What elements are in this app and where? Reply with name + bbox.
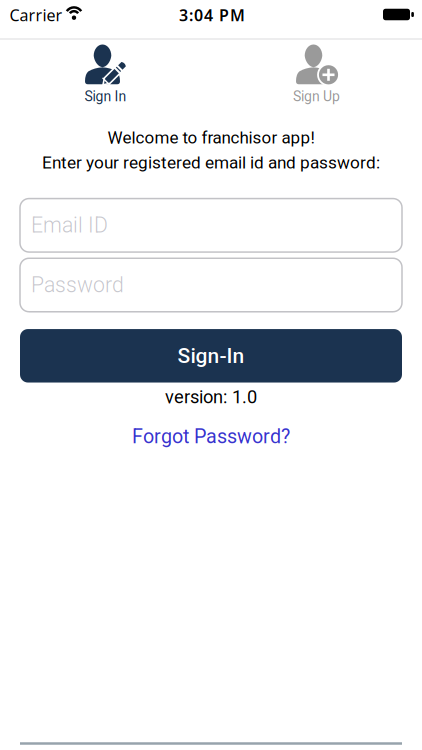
staticText: Forgot Password? bbox=[132, 425, 290, 448]
staticText: Enter your registered email id and passw… bbox=[42, 152, 380, 173]
staticText: Sign In bbox=[84, 88, 126, 105]
button[interactable]: Sign-In bbox=[20, 329, 402, 383]
staticText: Password bbox=[31, 273, 124, 297]
staticText: Carrier bbox=[9, 4, 62, 26]
staticText: Sign Up bbox=[293, 88, 340, 105]
button[interactable]: Sign In bbox=[0, 40, 211, 106]
button[interactable]: Sign Up bbox=[211, 40, 422, 106]
staticText: 3:04 PM bbox=[179, 4, 245, 26]
button[interactable]: Forgot Password? bbox=[81, 421, 341, 451]
staticText: Welcome to franchisor app! bbox=[107, 128, 314, 148]
staticText: version: 1.0 bbox=[165, 386, 257, 408]
staticText: Sign-In bbox=[177, 343, 244, 368]
staticText: Email ID bbox=[31, 213, 108, 238]
